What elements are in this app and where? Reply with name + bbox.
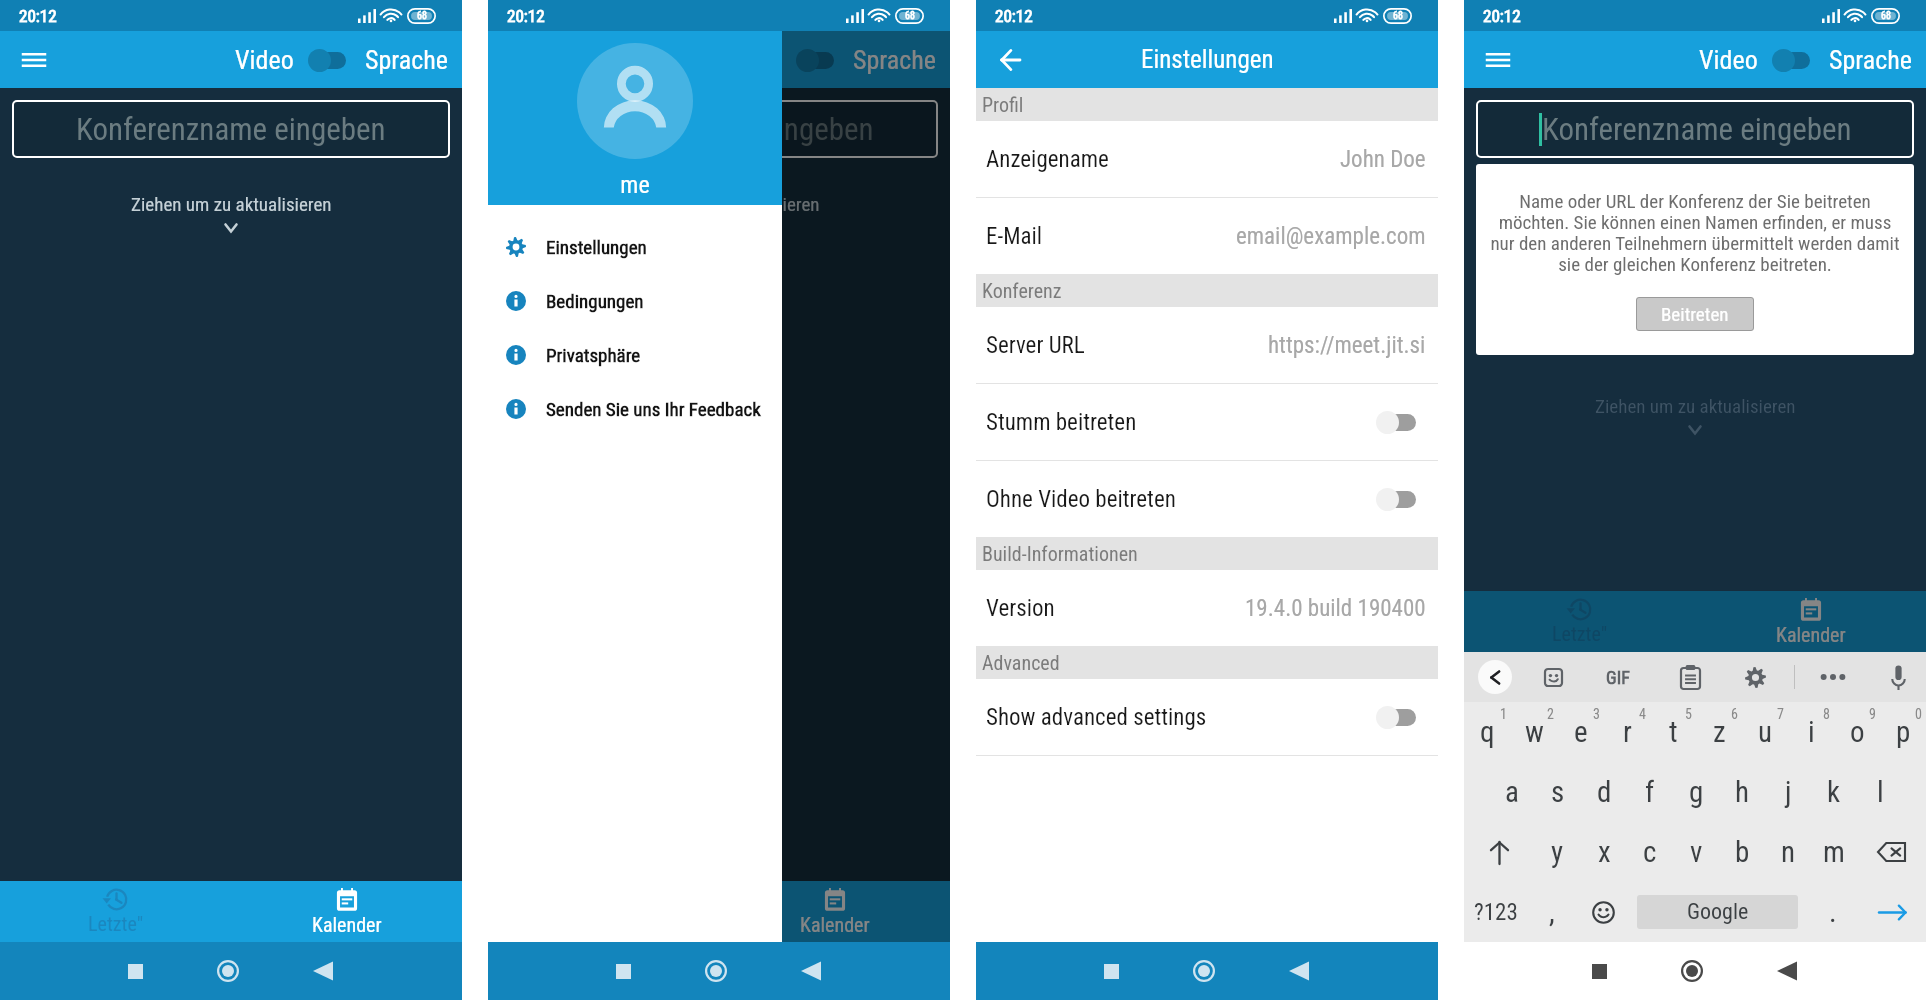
button[interactable]: e — [1558, 702, 1604, 762]
button[interactable]: n — [1765, 822, 1811, 882]
button[interactable]: Senden Sie uns Ihr Feedback — [488, 382, 782, 436]
button[interactable]: m — [1811, 822, 1857, 882]
button[interactable] — [1772, 47, 1810, 73]
staticText: Server URL — [986, 332, 1085, 359]
button[interactable]: j — [1765, 762, 1811, 822]
staticText: Sprache — [1829, 45, 1912, 75]
button[interactable]: q — [1464, 702, 1511, 762]
button[interactable]: Kalender — [231, 881, 462, 942]
staticText: Name oder URL der Konferenz der Sie beit… — [1490, 190, 1900, 275]
button[interactable]: c — [1627, 822, 1673, 882]
button[interactable]: Stumm beitreten — [976, 384, 1438, 460]
button[interactable]: Back — [1777, 961, 1797, 981]
button[interactable]: , — [1527, 882, 1577, 942]
staticText: 4 — [1639, 706, 1646, 722]
button[interactable]: Voice input — [1892, 665, 1905, 690]
button[interactable]: Open navigation drawer — [12, 38, 56, 82]
button[interactable]: Bedingungen — [488, 274, 782, 328]
button[interactable]: a — [1488, 762, 1535, 822]
button[interactable]: b — [1719, 822, 1765, 882]
button[interactable]: Konferenzname eingeben — [1476, 100, 1914, 158]
staticText: Konferenzname eingeben — [76, 111, 386, 147]
button[interactable] — [1376, 704, 1416, 730]
button[interactable]: Back — [988, 38, 1032, 82]
staticText: Einstellungen — [546, 236, 647, 258]
button[interactable]: s — [1535, 762, 1581, 822]
button[interactable]: Open navigation drawer — [1476, 38, 1520, 82]
staticText: q — [1480, 715, 1495, 749]
button[interactable] — [796, 47, 834, 73]
button[interactable]: Shift — [1464, 822, 1534, 882]
button[interactable]: f — [1627, 762, 1673, 822]
button[interactable]: Back — [1289, 961, 1309, 981]
button[interactable]: u — [1742, 702, 1788, 762]
button[interactable] — [308, 47, 346, 73]
button[interactable]: Home — [1193, 960, 1215, 982]
button[interactable]: Home — [217, 960, 239, 982]
button[interactable]: Kalender — [1695, 591, 1926, 652]
button[interactable]: Kalender — [719, 881, 950, 942]
button[interactable]: Emoji — [1577, 882, 1629, 942]
button[interactable]: Stickers — [1544, 668, 1563, 687]
button[interactable]: t — [1650, 702, 1696, 762]
button[interactable]: Server URL — [976, 307, 1438, 383]
button[interactable]: Version — [976, 570, 1438, 646]
staticText: w — [1525, 715, 1544, 749]
button[interactable]: GIF — [1606, 667, 1630, 688]
button[interactable]: Close toolbar — [1478, 660, 1512, 694]
button[interactable]: v — [1673, 822, 1719, 882]
button[interactable]: k — [1811, 762, 1857, 822]
button[interactable]: Backspace — [1857, 822, 1926, 882]
button[interactable]: Google — [1637, 895, 1798, 929]
button[interactable]: More options — [1820, 667, 1846, 687]
button[interactable]: o — [1834, 702, 1880, 762]
button[interactable]: Privatsphäre — [488, 328, 782, 382]
button[interactable]: Ohne Video beitreten — [976, 461, 1438, 537]
button[interactable]: y — [1534, 822, 1581, 882]
button[interactable]: Anzeigename — [976, 121, 1438, 197]
button[interactable]: Keyboard settings — [1745, 667, 1766, 688]
button[interactable]: Back — [801, 961, 821, 981]
button[interactable]: i — [1788, 702, 1834, 762]
staticText: Letzte" — [1552, 622, 1608, 645]
button[interactable]: x — [1581, 822, 1627, 882]
button[interactable]: Home — [705, 960, 727, 982]
button[interactable]: Beitreten — [1636, 297, 1754, 331]
button[interactable]: Konferenzname eingeben — [12, 100, 450, 158]
button[interactable] — [1376, 486, 1416, 512]
button[interactable]: Clipboard — [1680, 665, 1701, 690]
staticText: Video — [235, 45, 294, 75]
button[interactable]: r — [1604, 702, 1650, 762]
button[interactable]: E-Mail — [976, 198, 1438, 274]
staticText: Bedingungen — [546, 290, 644, 312]
button[interactable]: d — [1581, 762, 1627, 822]
button[interactable]: Back — [313, 961, 333, 981]
button[interactable]: Einstellungen — [488, 220, 782, 274]
button[interactable]: Konferenzname eingeben — [500, 100, 938, 158]
button[interactable]: g — [1673, 762, 1719, 822]
staticText: c — [1643, 835, 1657, 869]
button[interactable]: Letzte" — [0, 881, 231, 942]
button[interactable]: h — [1719, 762, 1765, 822]
button[interactable]: l — [1857, 762, 1903, 822]
staticText: Google — [1687, 899, 1749, 925]
button[interactable]: z — [1696, 702, 1742, 762]
button[interactable]: w — [1511, 702, 1558, 762]
button[interactable]: ?123 — [1464, 882, 1527, 942]
button[interactable]: Enter — [1859, 882, 1926, 942]
button[interactable]: p — [1880, 702, 1926, 762]
button[interactable]: Show advanced settings — [976, 679, 1438, 755]
staticText: u — [1758, 715, 1773, 749]
button[interactable]: . — [1806, 882, 1859, 942]
button[interactable] — [1376, 409, 1416, 435]
button[interactable]: Home — [1681, 960, 1703, 982]
staticText: Anzeigename — [986, 146, 1109, 173]
